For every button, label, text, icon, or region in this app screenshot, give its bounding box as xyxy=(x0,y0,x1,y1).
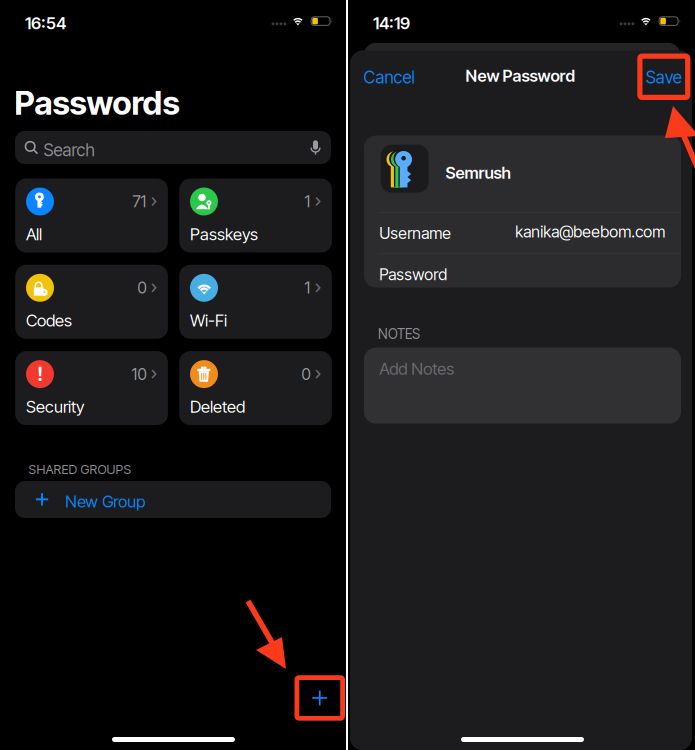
staticText: Passwords xyxy=(15,83,180,122)
staticText: Semrush xyxy=(445,163,510,183)
staticText: Password xyxy=(379,265,447,284)
staticText: Passkeys xyxy=(190,224,258,244)
staticText: 1 xyxy=(304,192,310,211)
staticText: 1 xyxy=(304,278,310,297)
staticText: All xyxy=(26,224,42,244)
staticText: 10 xyxy=(131,364,146,384)
staticText: Add Notes xyxy=(379,359,454,379)
button[interactable]: 0 xyxy=(15,265,168,339)
staticText: Codes xyxy=(26,310,72,330)
staticText: NOTES xyxy=(378,326,420,342)
button[interactable]: 1 xyxy=(179,265,332,339)
staticText: Deleted xyxy=(190,397,245,417)
button[interactable]: Save xyxy=(646,67,682,87)
staticText: New Group xyxy=(65,492,145,511)
staticText: kanika@beebom.com xyxy=(515,222,665,241)
staticText: Cancel xyxy=(363,67,414,87)
staticText: 14:19 xyxy=(373,13,410,33)
staticText: New Password xyxy=(465,66,575,86)
staticText: Username xyxy=(379,224,451,243)
staticText: 16:54 xyxy=(25,13,66,33)
staticText: Security xyxy=(26,397,84,417)
staticText: 71 xyxy=(132,192,146,211)
button[interactable]: 10 xyxy=(15,351,168,425)
button[interactable]: Add Notes xyxy=(364,348,681,424)
button[interactable]: Add password xyxy=(294,675,345,721)
staticText: 0 xyxy=(301,364,310,384)
button[interactable]: 71 xyxy=(15,178,168,252)
staticText: Wi-Fi xyxy=(190,310,227,330)
staticText: Save xyxy=(646,67,682,87)
staticText: SHARED GROUPS xyxy=(28,461,131,477)
button[interactable]: 0 xyxy=(179,351,332,425)
staticText: 0 xyxy=(137,278,146,297)
button[interactable]: Cancel xyxy=(363,67,414,87)
button[interactable]: New Group xyxy=(15,481,331,518)
button[interactable]: 1 xyxy=(179,178,332,252)
staticText: Search xyxy=(44,140,95,160)
